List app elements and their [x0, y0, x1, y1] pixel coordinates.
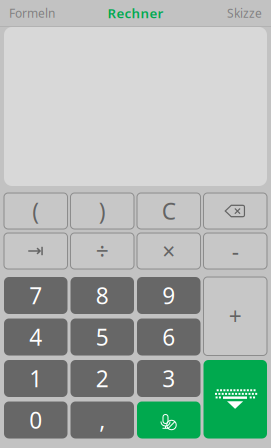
- button[interactable]: Open parenthesis: [4, 193, 67, 229]
- button[interactable]: Hide keyboard: [203, 360, 267, 438]
- button[interactable]: Rechner: [107, 4, 163, 22]
- staticText: 2: [96, 363, 109, 393]
- staticText: +: [229, 301, 242, 331]
- staticText: 9: [162, 280, 175, 310]
- button[interactable]: Delete: [203, 193, 267, 229]
- button[interactable]: Divide: [70, 233, 134, 269]
- staticText: 7: [29, 280, 42, 310]
- button[interactable]: 9: [137, 277, 200, 314]
- staticText: ×: [162, 236, 175, 266]
- button[interactable]: 4: [4, 318, 67, 355]
- staticText: 8: [96, 280, 109, 310]
- button[interactable]: 8: [70, 277, 134, 314]
- button[interactable]: Clear: [137, 193, 200, 229]
- staticText: ÷: [96, 236, 109, 266]
- button[interactable]: Skizze: [227, 5, 262, 21]
- button[interactable]: 5: [70, 318, 134, 355]
- staticText: ): [99, 196, 106, 226]
- staticText: 5: [96, 322, 109, 352]
- button[interactable]: 7: [4, 277, 67, 314]
- staticText: 4: [29, 322, 42, 352]
- staticText: Formeln: [9, 5, 55, 21]
- button[interactable]: Dictation: [137, 401, 200, 438]
- button[interactable]: Minus: [203, 233, 267, 269]
- button[interactable]: 1: [4, 360, 67, 397]
- staticText: Rechner: [107, 4, 163, 22]
- button[interactable]: 6: [137, 318, 200, 355]
- button[interactable]: Formeln: [9, 5, 55, 21]
- button[interactable]: Close parenthesis: [70, 193, 134, 229]
- button[interactable]: Plus: [203, 277, 267, 355]
- button[interactable]: ,: [70, 401, 134, 438]
- staticText: 3: [162, 363, 175, 393]
- staticText: Skizze: [227, 5, 262, 21]
- staticText: 0: [29, 405, 42, 435]
- staticText: ,: [99, 405, 105, 435]
- staticText: 1: [29, 363, 42, 393]
- staticText: (: [32, 196, 39, 226]
- button[interactable]: Multiply: [137, 233, 200, 269]
- button[interactable]: 2: [70, 360, 134, 397]
- staticText: -: [232, 236, 239, 266]
- staticText: C: [162, 196, 176, 226]
- button[interactable]: 3: [137, 360, 200, 397]
- button[interactable]: 0: [4, 401, 67, 438]
- button[interactable]: Tab: [4, 233, 67, 269]
- staticText: 6: [162, 322, 175, 352]
